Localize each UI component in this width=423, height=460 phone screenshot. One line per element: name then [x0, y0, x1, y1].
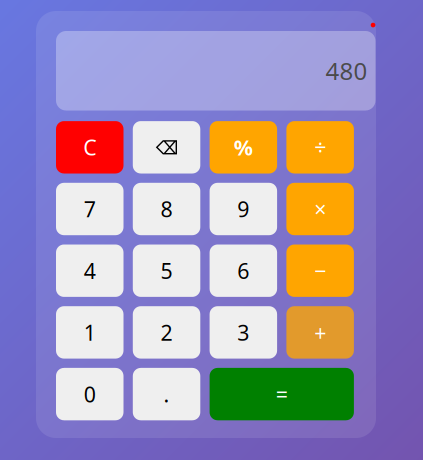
staticText: 2 [161, 318, 173, 346]
button[interactable]: 5 [133, 244, 200, 297]
button[interactable]: Backspace [133, 121, 200, 173]
button[interactable]: % [210, 121, 277, 173]
button[interactable]: ÷ [286, 121, 354, 173]
button[interactable]: × [286, 183, 354, 235]
staticText: 480 [325, 55, 367, 87]
button[interactable]: 3 [210, 306, 277, 359]
staticText: 8 [161, 195, 173, 223]
staticText: 9 [237, 195, 249, 223]
staticText: = [276, 380, 288, 408]
staticText: × [314, 195, 326, 223]
staticText: C [83, 133, 96, 161]
staticText: + [314, 318, 326, 346]
button[interactable]: 8 [133, 183, 200, 235]
staticText: 0 [84, 380, 96, 408]
staticText: ÷ [314, 133, 326, 161]
button[interactable]: − [286, 244, 354, 297]
button[interactable]: . [133, 368, 200, 420]
button[interactable]: 9 [210, 183, 277, 235]
staticText: 3 [237, 318, 249, 346]
button[interactable]: 2 [133, 306, 200, 359]
staticText: 5 [161, 256, 173, 285]
button[interactable]: 4 [56, 244, 123, 297]
staticText: 4 [84, 256, 96, 285]
staticText: . [164, 380, 170, 408]
staticText: 6 [237, 256, 249, 285]
button[interactable]: C [56, 121, 123, 173]
staticText: − [314, 256, 326, 285]
button[interactable]: 1 [56, 306, 123, 359]
staticText: % [234, 133, 253, 161]
staticText: 7 [84, 195, 96, 223]
button[interactable]: 6 [210, 244, 277, 297]
staticText: 1 [84, 318, 96, 346]
button[interactable]: + [286, 306, 354, 359]
button[interactable]: = [210, 368, 354, 420]
button[interactable]: 7 [56, 183, 123, 235]
button[interactable]: 0 [56, 368, 123, 420]
